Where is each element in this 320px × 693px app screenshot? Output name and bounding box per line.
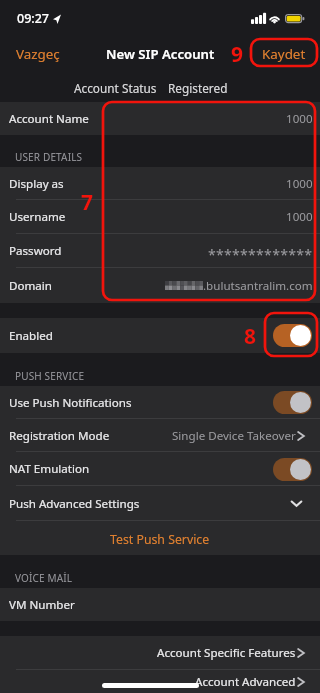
button[interactable]: Account Name — [0, 102, 320, 135]
button[interactable]: Registration Mode — [0, 419, 320, 452]
staticText: USER DETAILS — [15, 150, 83, 164]
staticText: VM Number — [9, 597, 75, 613]
staticText: 1000 — [286, 176, 313, 192]
button[interactable]: Toggle — [273, 391, 312, 414]
staticText: 8 — [244, 322, 257, 351]
staticText: Account Advanced — [195, 674, 296, 690]
staticText: New SIP Account — [106, 45, 215, 63]
staticText: 1000 — [286, 111, 313, 127]
staticText: Enabled — [9, 328, 53, 344]
staticText: Registration Mode — [9, 428, 110, 444]
staticText: PUSH SERVICE — [15, 369, 85, 383]
button[interactable]: Username — [0, 200, 320, 234]
staticText: ************* — [208, 245, 313, 264]
button[interactable]: Account Advanced — [0, 670, 320, 693]
staticText: Username — [9, 209, 66, 225]
button[interactable]: Kaydet — [252, 38, 320, 70]
staticText: Use Push Notifications — [9, 395, 132, 411]
staticText: 1000 — [286, 209, 313, 225]
button[interactable]: Password — [0, 234, 320, 268]
button[interactable]: Toggle — [273, 458, 312, 481]
button[interactable]: Push Advanced Settings — [0, 486, 320, 521]
staticText: Account Specific Features — [157, 645, 296, 661]
button[interactable]: Account Specific Features — [0, 636, 320, 670]
staticText: Account Name — [9, 111, 89, 127]
staticText: 9 — [231, 40, 244, 69]
staticText: Single Device Takeover — [172, 428, 296, 444]
staticText: Account Status — [74, 80, 157, 96]
button[interactable]: Toggle — [273, 324, 312, 347]
staticText: Test Push Service — [110, 531, 210, 548]
button[interactable]: Test Push Service — [0, 521, 320, 555]
button[interactable]: VM Number — [0, 588, 320, 621]
staticText: Kaydet — [262, 45, 306, 63]
staticText: Display as — [9, 176, 64, 192]
button[interactable]: Vazgeç — [0, 38, 70, 70]
staticText: Domain — [9, 278, 52, 294]
staticText: Push Advanced Settings — [9, 496, 140, 512]
staticText: NAT Emulation — [9, 461, 90, 477]
staticText: VOİCE MAİL — [15, 571, 73, 585]
staticText: 7 — [81, 188, 94, 217]
button[interactable]: Display as — [0, 167, 320, 200]
staticText: Vazgeç — [16, 45, 60, 63]
staticText: Registered — [168, 80, 228, 96]
staticText: 09:27 — [17, 10, 50, 27]
staticText: Password — [9, 243, 62, 259]
staticText: .bulutsantralim.com — [203, 278, 313, 294]
button[interactable]: Domain — [0, 268, 320, 303]
